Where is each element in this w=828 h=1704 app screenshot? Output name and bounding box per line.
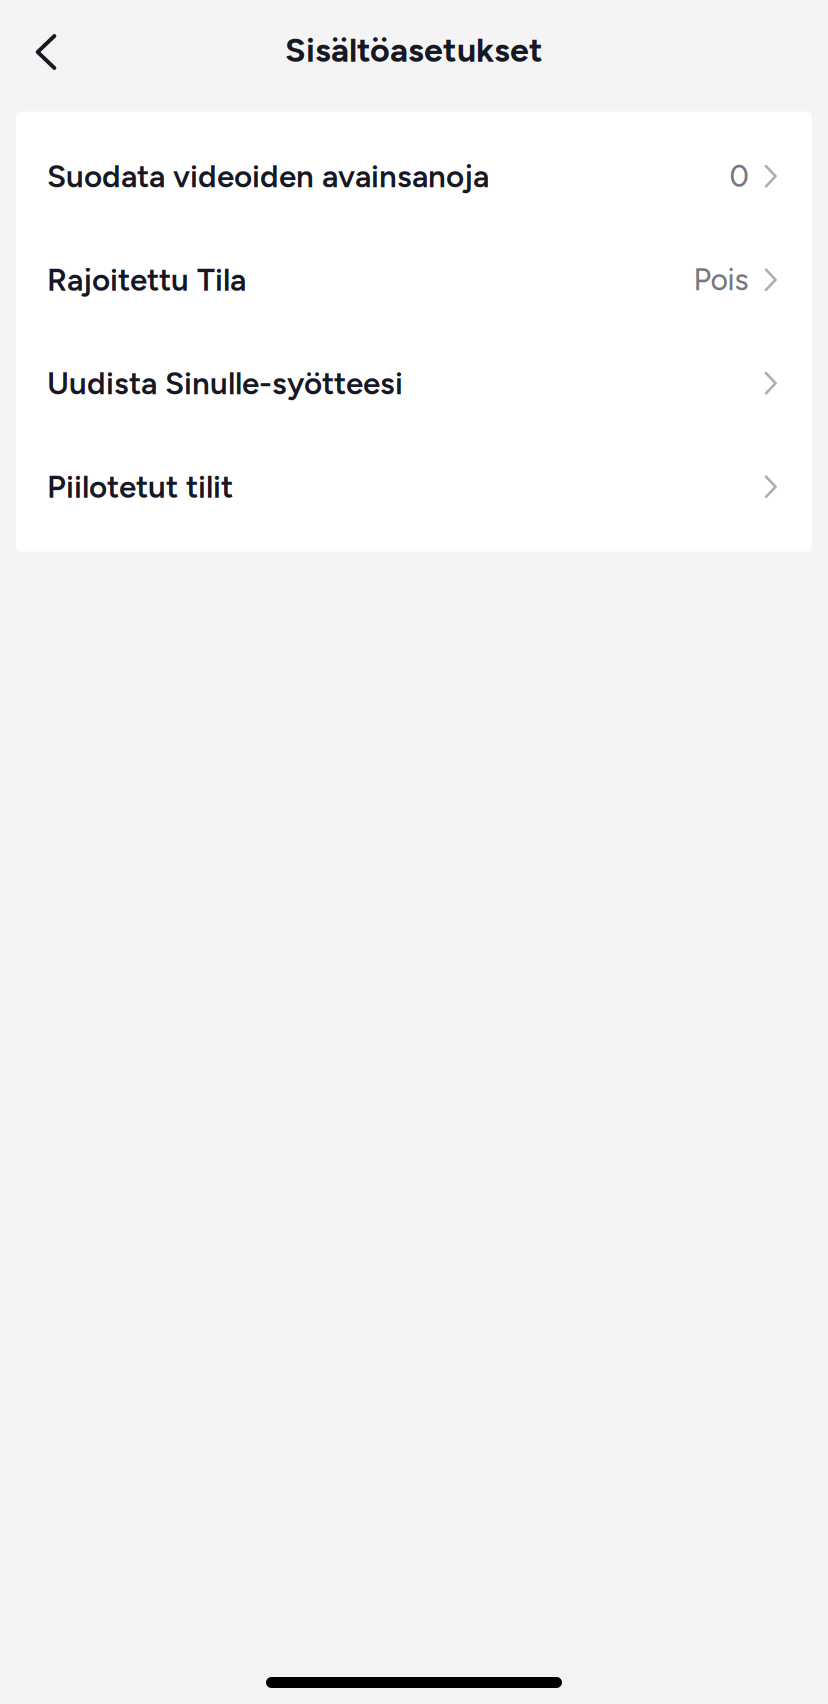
button[interactable]: Rajoitettu Tila	[16, 228, 812, 331]
staticText: Rajoitettu Tila	[47, 261, 246, 299]
button[interactable]: Suodata videoiden avainsanoja	[16, 124, 812, 228]
button[interactable]: Piilotetut tilit	[16, 435, 812, 538]
staticText: Uudista Sinulle-syötteesi	[47, 364, 403, 402]
staticText: Suodata videoiden avainsanoja	[47, 157, 489, 195]
button[interactable]: Uudista Sinulle-syötteesi	[16, 331, 812, 435]
staticText: Pois	[694, 262, 749, 298]
staticText: Piilotetut tilit	[47, 468, 233, 506]
staticText: Sisältöasetukset	[285, 30, 543, 70]
staticText: 0	[730, 158, 749, 194]
button[interactable]: Back	[17, 19, 75, 81]
